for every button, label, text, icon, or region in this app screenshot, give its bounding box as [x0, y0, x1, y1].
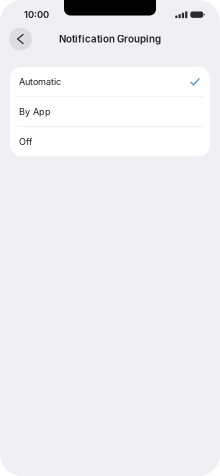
- staticText: Off: [19, 136, 32, 147]
- staticText: Notification Grouping: [59, 33, 161, 45]
- staticText: Automatic: [19, 76, 61, 87]
- button[interactable]: Automatic: [10, 67, 210, 96]
- staticText: By App: [19, 106, 51, 117]
- button[interactable]: Back: [9, 27, 32, 50]
- button[interactable]: Off: [10, 127, 210, 156]
- staticText: 10:00: [24, 9, 49, 20]
- button[interactable]: By App: [10, 97, 210, 126]
